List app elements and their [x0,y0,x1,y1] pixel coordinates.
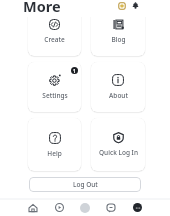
button[interactable]: Notifications [131,1,140,10]
button[interactable]: Rewards [118,2,126,10]
button[interactable]: Messages [98,199,124,216]
staticText: 1 [73,68,76,74]
staticText: Help [47,149,62,158]
button[interactable]: Help [28,118,81,171]
staticText: Quick Log In [99,148,138,157]
button[interactable]: Create [28,6,81,56]
button[interactable]: More [124,199,150,216]
staticText: Log Out [73,180,98,189]
button[interactable]: Watch [46,199,72,216]
button[interactable]: Settings [28,62,81,112]
staticText: Settings [42,91,68,100]
button[interactable]: Home [20,199,46,216]
button[interactable]: Log Out [29,177,141,192]
staticText: Blog [111,35,126,44]
button[interactable]: About [91,62,145,112]
staticText: About [109,91,128,100]
button[interactable]: Blog [91,6,145,56]
button[interactable]: Profile [72,199,98,216]
staticText: More [23,0,61,13]
button[interactable]: Quick Log In [91,118,145,171]
staticText: Create [44,35,65,44]
